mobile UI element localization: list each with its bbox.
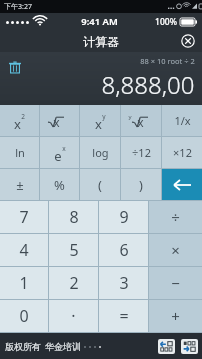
staticText: 2 — [69, 272, 79, 294]
button[interactable]: ÷12 — [121, 137, 161, 168]
staticText: · — [71, 305, 76, 327]
staticText: = — [119, 305, 129, 327]
staticText: ± — [16, 176, 24, 194]
button[interactable]: y — [121, 105, 161, 136]
button[interactable]: 3 — [99, 267, 148, 299]
staticText: 4 — [19, 239, 29, 261]
button[interactable]: 移到右侧 — [181, 339, 198, 354]
staticText: 9 — [119, 206, 129, 228]
staticText: − — [171, 273, 180, 293]
button[interactable]: 6 — [99, 234, 148, 266]
button[interactable]: x — [40, 105, 79, 136]
staticText: x — [62, 144, 66, 153]
staticText: y — [102, 112, 106, 121]
staticText: x — [14, 115, 21, 133]
button[interactable]: ln — [0, 137, 39, 168]
button[interactable]: ÷ — [149, 201, 202, 233]
button[interactable]: 5 — [49, 234, 98, 266]
button[interactable]: ± — [0, 169, 39, 200]
button[interactable]: ) — [121, 169, 161, 200]
button[interactable]: x — [0, 105, 39, 136]
staticText: × — [171, 240, 180, 260]
button[interactable]: 4 — [0, 234, 48, 266]
staticText: ÷12 — [132, 145, 151, 160]
staticText: x — [53, 114, 60, 130]
staticText: ÷ — [171, 207, 180, 227]
button[interactable]: 8 — [49, 201, 98, 233]
staticText: ×12 — [173, 145, 192, 160]
button[interactable]: 1/x — [162, 105, 202, 136]
staticText: 华金培训 — [45, 341, 81, 352]
staticText: + — [171, 306, 180, 326]
staticText: 版权所有 — [5, 341, 41, 352]
staticText: % — [54, 176, 65, 194]
button[interactable] — [162, 169, 202, 200]
button[interactable]: 2 — [49, 267, 98, 299]
button[interactable]: = — [99, 300, 148, 332]
button[interactable]: × — [149, 234, 202, 266]
button[interactable]: 清除 — [6, 59, 23, 76]
button[interactable]: log — [80, 137, 120, 168]
staticText: 1 — [19, 272, 29, 294]
staticText: log — [92, 145, 109, 160]
staticText: 9:41 AM — [81, 15, 118, 28]
staticText: 8,888,00 — [101, 68, 195, 101]
button[interactable]: − — [149, 267, 202, 299]
button[interactable]: 关闭 — [181, 34, 195, 48]
staticText: 8 — [69, 206, 79, 228]
staticText: e — [54, 147, 62, 165]
button[interactable]: ( — [80, 169, 120, 200]
staticText: ln — [15, 145, 25, 160]
staticText: 1/x — [174, 113, 191, 128]
button[interactable]: 9 — [99, 201, 148, 233]
staticText: x — [137, 114, 144, 130]
button[interactable]: 7 — [0, 201, 48, 233]
staticText: 下午3:27 — [4, 2, 32, 12]
staticText: ) — [139, 176, 143, 194]
staticText: y — [128, 113, 132, 121]
staticText: 6 — [119, 239, 129, 261]
button[interactable]: ×12 — [162, 137, 202, 168]
button[interactable]: 移到左侧 — [158, 339, 175, 354]
staticText: 5 — [69, 239, 79, 261]
staticText: 计算器 — [83, 34, 119, 49]
button[interactable]: 0 — [0, 300, 48, 332]
button[interactable]: 1 — [0, 267, 48, 299]
staticText: 0 — [19, 305, 29, 327]
button[interactable]: + — [149, 300, 202, 332]
staticText: x — [95, 115, 102, 133]
staticText: 3 — [119, 272, 129, 294]
staticText: 100% — [155, 16, 177, 28]
button[interactable]: x — [80, 105, 120, 136]
button[interactable]: · — [49, 300, 98, 332]
staticText: ( — [98, 176, 102, 194]
button[interactable]: % — [40, 169, 79, 200]
button[interactable]: e — [40, 137, 79, 168]
staticText: 2 — [21, 112, 25, 121]
staticText: 7 — [19, 206, 29, 228]
staticText: 88 × 10 root ÷ 2 — [140, 56, 195, 66]
